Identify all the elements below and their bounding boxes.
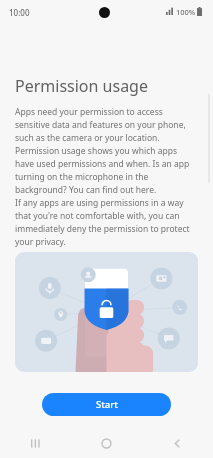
button[interactable]: Back: [142, 428, 213, 458]
button[interactable]: Home: [71, 428, 142, 458]
button[interactable]: Start: [42, 393, 171, 416]
button[interactable]: Recents: [0, 428, 71, 458]
staticText: If any apps are using permissions in a w…: [15, 197, 195, 248]
staticText: Permission usage: [15, 75, 148, 97]
staticText: Apps need your permission to access sens…: [15, 106, 192, 196]
staticText: Start: [96, 398, 118, 411]
staticText: 10:00: [9, 7, 30, 18]
staticText: 100%: [176, 7, 196, 17]
